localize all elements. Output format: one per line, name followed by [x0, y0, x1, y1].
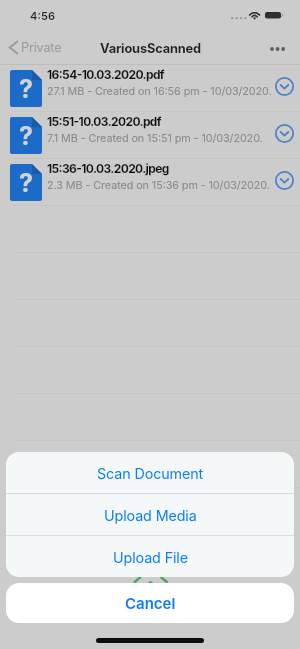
staticText: Cancel — [125, 594, 176, 612]
staticText: 16:54-10.03.2020.pdf — [47, 67, 164, 82]
staticText: ? — [19, 121, 33, 151]
button[interactable]: More options — [260, 37, 300, 57]
staticText: ? — [19, 74, 33, 104]
button[interactable]: Upload File — [6, 536, 294, 577]
button[interactable]: Expand — [271, 167, 297, 193]
staticText: Scan Document — [97, 465, 204, 482]
staticText: 4:56 — [30, 9, 56, 22]
staticText: 2.3 MB - Created on 15:36 pm - 10/03/202… — [47, 179, 270, 192]
button[interactable]: ? — [0, 112, 300, 159]
staticText: Upload File — [113, 549, 188, 566]
staticText: VariousScanned — [100, 41, 201, 56]
button[interactable]: Scan Document — [6, 452, 294, 493]
staticText: Upload Media — [104, 507, 197, 524]
staticText: 27.1 MB - Created on 16:56 pm - 10/03/20… — [47, 85, 272, 98]
staticText: Private — [21, 40, 62, 55]
button[interactable]: Expand — [271, 120, 297, 146]
button[interactable]: Private — [0, 35, 70, 60]
button[interactable]: Upload Media — [6, 494, 294, 535]
staticText: 15:36-10.03.2020.jpeg — [47, 161, 169, 176]
button[interactable]: ? — [0, 65, 300, 112]
staticText: ? — [19, 168, 33, 198]
button[interactable]: ? — [0, 159, 300, 206]
button[interactable]: Expand — [271, 73, 297, 99]
staticText: 15:51-10.03.2020.pdf — [47, 114, 161, 129]
staticText: 7.1 MB - Created on 15:51 pm - 10/03/202… — [47, 132, 263, 145]
button[interactable]: Cancel — [6, 583, 294, 623]
